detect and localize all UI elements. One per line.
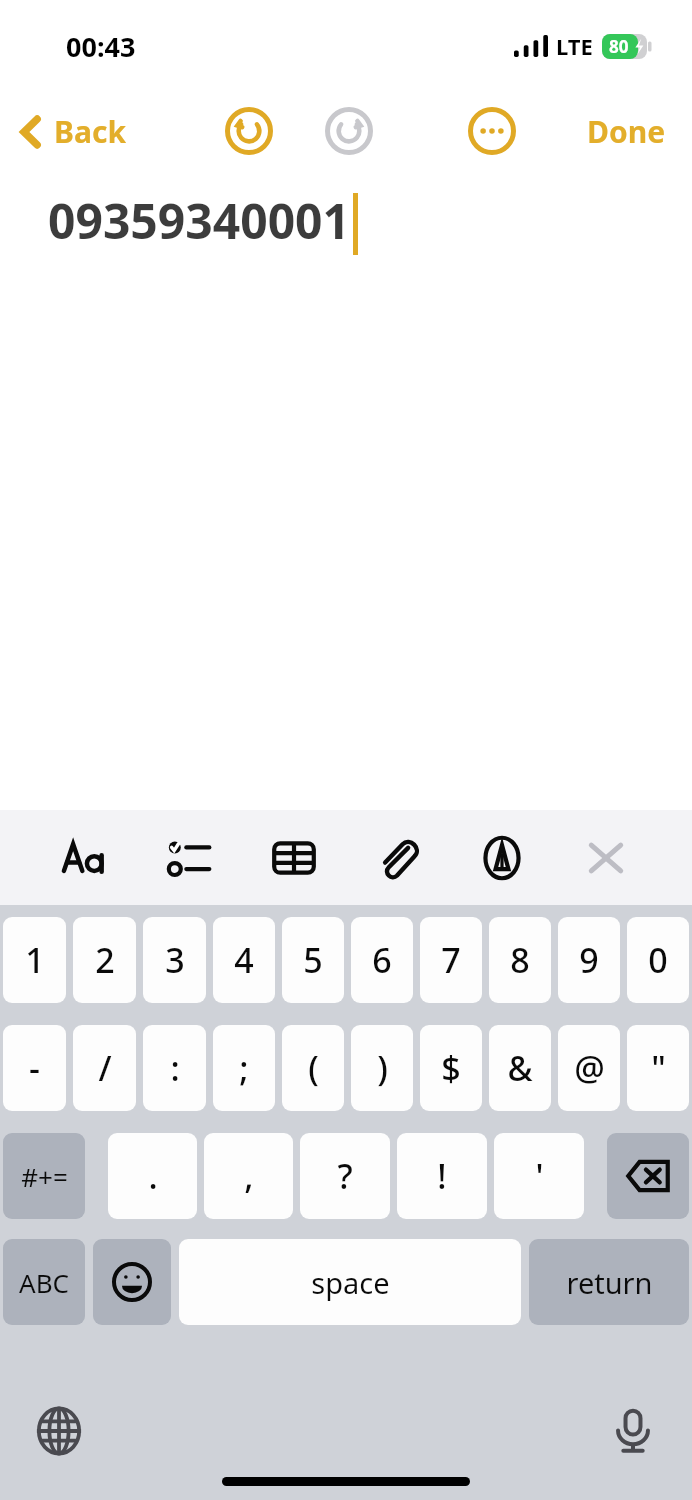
staticText: @ [574, 1045, 605, 1091]
button[interactable]: : [143, 1025, 206, 1111]
button[interactable]: ! [397, 1133, 487, 1219]
button[interactable]: 4 [213, 917, 275, 1003]
button[interactable]: Undo [220, 102, 278, 160]
staticText: : [170, 1045, 180, 1091]
staticText: 7 [441, 937, 461, 983]
staticText: ( [308, 1045, 319, 1091]
staticText: ) [377, 1045, 388, 1091]
button[interactable]: 5 [282, 917, 344, 1003]
button[interactable]: #+= [3, 1133, 85, 1219]
staticText: Back [54, 111, 126, 152]
staticText: 6 [372, 937, 392, 983]
staticText: / [98, 1045, 112, 1091]
button[interactable]: Done [579, 105, 674, 158]
staticText: " [651, 1045, 666, 1091]
button[interactable]: ( [282, 1025, 344, 1111]
staticText: #+= [21, 1159, 68, 1194]
button[interactable]: 6 [351, 917, 413, 1003]
button[interactable]: Back [12, 105, 134, 158]
button[interactable]: 3 [143, 917, 206, 1003]
staticText: space [311, 1263, 390, 1302]
button[interactable]: - [3, 1025, 66, 1111]
staticText: ABC [19, 1265, 69, 1300]
staticText: $ [441, 1045, 461, 1091]
button[interactable]: Dictate [602, 1400, 664, 1462]
button[interactable]: Backspace [607, 1133, 689, 1219]
button[interactable]: Attach [368, 828, 428, 888]
button[interactable]: & [489, 1025, 551, 1111]
staticText: . [148, 1153, 158, 1199]
staticText: ! [437, 1153, 447, 1199]
staticText: & [507, 1045, 533, 1091]
staticText: return [566, 1263, 653, 1302]
button[interactable]: ; [213, 1025, 275, 1111]
staticText: 09359340001 [48, 188, 351, 253]
button[interactable]: , [204, 1133, 293, 1219]
staticText: 00:43 [66, 28, 136, 65]
button[interactable]: Table [264, 828, 324, 888]
button[interactable]: 2 [73, 917, 136, 1003]
staticText: ? [337, 1153, 353, 1199]
button[interactable]: $ [420, 1025, 482, 1111]
staticText: 9 [579, 937, 599, 983]
button[interactable]: Close keyboard [576, 828, 636, 888]
button[interactable]: @ [558, 1025, 620, 1111]
button[interactable]: " [627, 1025, 689, 1111]
button[interactable]: Change keyboard [28, 1400, 90, 1462]
button[interactable]: space [179, 1239, 521, 1325]
button[interactable]: Checklist [160, 828, 220, 888]
button[interactable]: ) [351, 1025, 413, 1111]
staticText: 5 [303, 937, 323, 983]
button[interactable]: Emoji [93, 1239, 171, 1325]
staticText: 4 [234, 937, 254, 983]
button[interactable]: return [529, 1239, 689, 1325]
button[interactable]: ' [494, 1133, 584, 1219]
button[interactable]: Redo [320, 102, 378, 160]
staticText: 1 [25, 937, 45, 983]
button[interactable]: 8 [489, 917, 551, 1003]
staticText: ; [239, 1045, 249, 1091]
button[interactable]: 0 [627, 917, 689, 1003]
staticText: 80 [609, 35, 629, 58]
staticText: 8 [510, 937, 530, 983]
staticText: - [29, 1045, 40, 1091]
button[interactable]: 7 [420, 917, 482, 1003]
button[interactable]: Format text [56, 828, 116, 888]
staticText: 3 [165, 937, 185, 983]
staticText: ' [535, 1153, 544, 1199]
button[interactable]: . [108, 1133, 197, 1219]
button[interactable]: ABC [3, 1239, 85, 1325]
button[interactable]: Markup [472, 828, 532, 888]
button[interactable]: 9 [558, 917, 620, 1003]
button[interactable]: / [73, 1025, 136, 1111]
staticText: 2 [95, 937, 115, 983]
staticText: 0 [648, 937, 668, 983]
button[interactable]: ? [300, 1133, 390, 1219]
staticText: LTE [556, 31, 593, 61]
staticText: Done [587, 111, 666, 152]
staticText: , [244, 1153, 254, 1199]
button[interactable]: 1 [3, 917, 66, 1003]
button[interactable]: More options [463, 102, 521, 160]
